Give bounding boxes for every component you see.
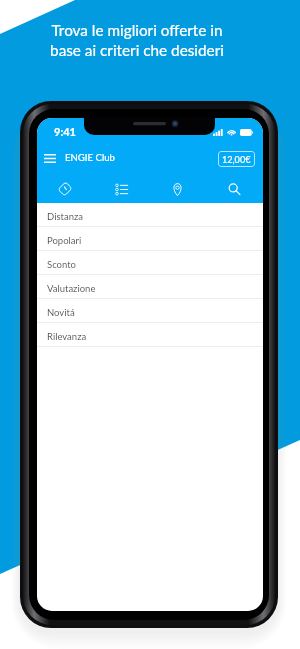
button[interactable]: Offers: [37, 175, 93, 203]
staticText: Distanza: [47, 211, 83, 222]
staticText: Popolari: [47, 235, 82, 246]
staticText: Trova le migliori offerte in base ai cri…: [50, 21, 224, 60]
button[interactable]: Rilevanza: [37, 323, 263, 347]
button[interactable]: Popolari: [37, 227, 263, 251]
staticText: 12,00€: [222, 154, 251, 165]
staticText: Novitá: [47, 307, 75, 318]
button[interactable]: Search: [206, 175, 263, 203]
staticText: 9:41: [54, 125, 76, 138]
button[interactable]: 12,00€: [218, 151, 255, 167]
button[interactable]: Sconto: [37, 251, 263, 275]
button[interactable]: Distanza: [37, 203, 263, 227]
button[interactable]: Valutazione: [37, 275, 263, 299]
staticText: Rilevanza: [47, 331, 87, 342]
staticText: ENGIE Club: [65, 152, 115, 164]
button[interactable]: Map: [149, 175, 206, 203]
staticText: Sconto: [47, 259, 76, 270]
button[interactable]: Menu: [39, 147, 61, 169]
button[interactable]: Novitá: [37, 299, 263, 323]
staticText: Valutazione: [47, 283, 96, 294]
button[interactable]: List: [93, 175, 149, 203]
